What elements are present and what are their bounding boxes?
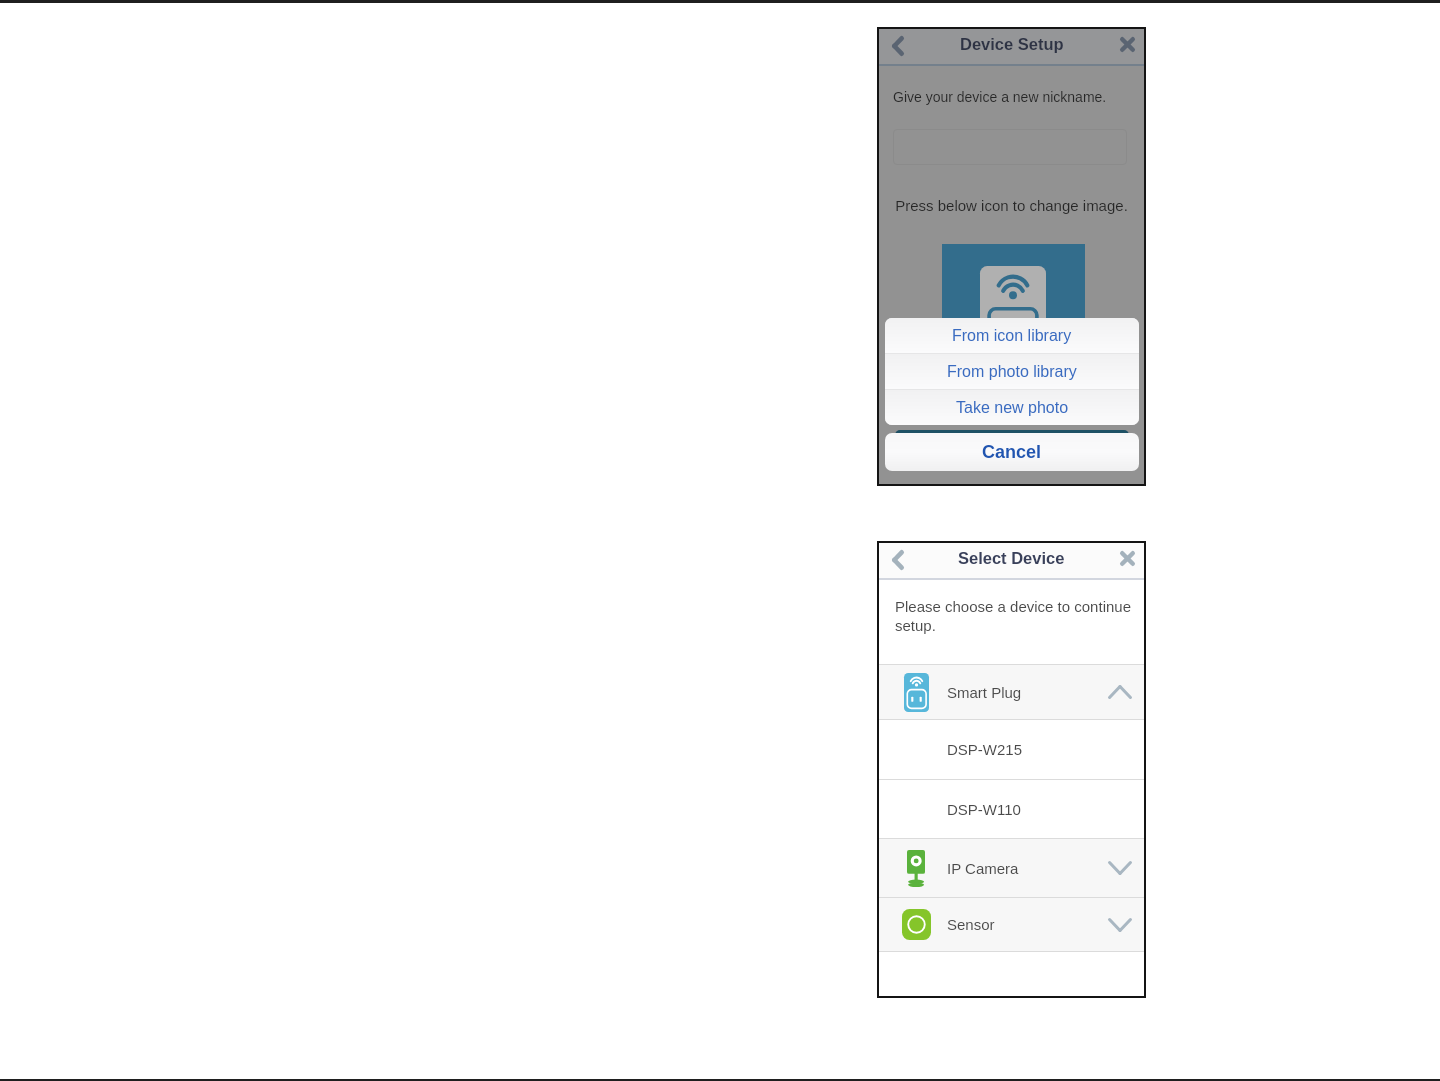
staticText: Device Setup — [960, 35, 1064, 53]
button[interactable]: Cancel — [885, 433, 1139, 471]
staticText: Cancel — [982, 442, 1042, 462]
button[interactable]: DSP-W215 — [879, 720, 1144, 779]
staticText: From photo library — [947, 363, 1077, 381]
staticText: From icon library — [952, 327, 1072, 345]
button[interactable]: Smart Plug — [879, 665, 1144, 719]
staticText: IP Camera — [947, 860, 1101, 877]
button[interactable]: From photo library — [885, 354, 1139, 389]
button[interactable]: DSP-W110 — [879, 780, 1144, 838]
button[interactable]: Close — [1114, 545, 1140, 571]
button[interactable]: Sensor — [879, 898, 1144, 951]
staticText: Smart Plug — [947, 684, 1101, 701]
button[interactable]: From icon library — [885, 318, 1139, 353]
staticText: Sensor — [947, 916, 1101, 933]
staticText: Select Device — [958, 549, 1065, 567]
button[interactable]: Back — [885, 547, 911, 573]
staticText: DSP-W215 — [947, 741, 1023, 758]
button[interactable]: Change device image — [942, 244, 1085, 352]
button[interactable]: Close — [1114, 31, 1140, 57]
staticText: Give your device a new nickname. — [893, 89, 1107, 105]
staticText: Press below icon to change image. — [879, 197, 1144, 214]
button[interactable]: Take new photo — [885, 390, 1139, 425]
staticText: Take new photo — [956, 399, 1069, 417]
button[interactable]: IP Camera — [879, 839, 1144, 897]
staticText: DSP-W110 — [947, 801, 1021, 818]
staticText: Please choose a device to continue setup… — [895, 598, 1133, 634]
button[interactable]: Back — [885, 33, 911, 59]
